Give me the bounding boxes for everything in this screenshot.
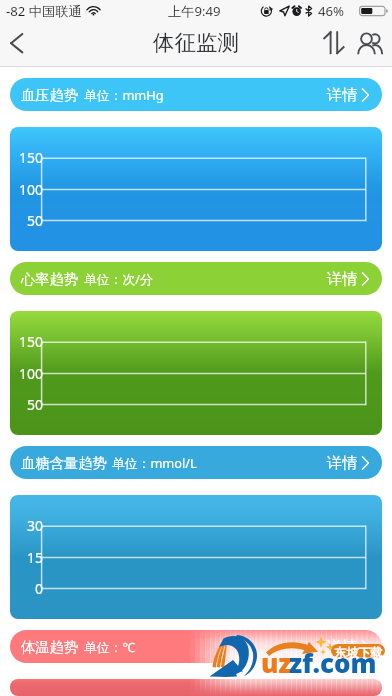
- button[interactable]: 心率趋势: [10, 262, 382, 295]
- staticText: 单位：℃: [84, 638, 136, 655]
- button[interactable]: 150: [10, 127, 382, 251]
- staticText: 30: [10, 516, 43, 535]
- staticText: 150: [10, 148, 43, 167]
- button[interactable]: 150: [10, 311, 382, 435]
- staticText: 150: [10, 332, 43, 351]
- staticText: 详情: [327, 85, 358, 104]
- staticText: 单位：次/分: [84, 270, 153, 287]
- button[interactable]: 30: [10, 495, 382, 619]
- staticText: 46%: [318, 2, 345, 20]
- staticText: 详情: [327, 637, 358, 656]
- staticText: -82 中国联通: [6, 2, 82, 20]
- button[interactable]: 血糖含量趋势: [10, 446, 382, 479]
- button[interactable]: 血压趋势: [10, 78, 382, 111]
- staticText: 心率趋势: [21, 270, 79, 288]
- button[interactable]: Back: [0, 22, 44, 66]
- staticText: 上午9:49: [168, 2, 221, 20]
- button[interactable]: 40: [10, 679, 382, 696]
- button[interactable]: 体温趋势: [10, 630, 382, 663]
- staticText: 单位：mmol/L: [112, 454, 197, 471]
- staticText: 详情: [327, 453, 358, 472]
- button[interactable]: Sort: [316, 21, 352, 66]
- staticText: 50: [10, 211, 43, 230]
- staticText: 单位：mmHg: [84, 86, 164, 103]
- staticText: 50: [10, 395, 43, 414]
- button[interactable]: Members: [352, 21, 392, 66]
- staticText: 详情: [327, 269, 358, 288]
- staticText: 血糖含量趋势: [21, 454, 107, 472]
- staticText: uz: [261, 645, 292, 680]
- staticText: 体温趋势: [21, 638, 79, 656]
- staticText: 100: [10, 180, 43, 199]
- staticText: 体征监测: [153, 29, 239, 56]
- staticText: 0: [10, 579, 43, 598]
- staticText: zf.com: [289, 645, 377, 680]
- staticText: 100: [10, 364, 43, 383]
- staticText: 血压趋势: [21, 86, 79, 104]
- staticText: 东坡下载: [334, 645, 383, 660]
- staticText: 15: [10, 548, 43, 567]
